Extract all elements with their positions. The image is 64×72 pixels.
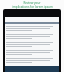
staticText: implications for lorem ipsum	[12, 5, 53, 9]
staticText: Review your	[23, 1, 41, 5]
